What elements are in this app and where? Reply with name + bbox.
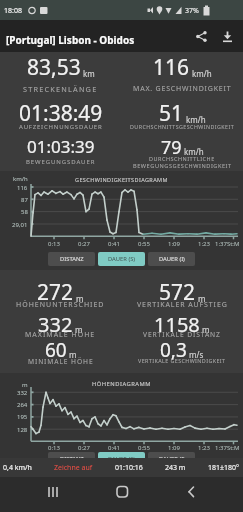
staticText: 0:41	[108, 444, 120, 452]
staticText: 332	[17, 389, 28, 397]
staticText: AUFZEICHNUNGSDAUER	[19, 123, 103, 131]
staticText: 0:55	[138, 444, 150, 452]
staticText: DISTANZ	[60, 255, 84, 263]
staticText: 116	[17, 184, 28, 192]
staticText: km/h	[186, 114, 206, 125]
staticText: 83,53	[27, 53, 81, 82]
staticText: MAXIMALE HÖHE	[25, 330, 96, 340]
staticText: 29,01	[12, 221, 28, 229]
staticText: BEWEGUNGSDAUER	[26, 158, 96, 166]
staticText: DURCHSCHNITTSGESCHWINDIGKEIT	[130, 123, 235, 130]
staticText: 128	[17, 426, 28, 434]
staticText: 51	[159, 99, 184, 128]
staticText: DAUER (S)	[108, 255, 136, 263]
staticText: 87	[21, 196, 28, 204]
staticText: 1:09	[168, 444, 180, 452]
staticText: m/s	[189, 349, 204, 360]
staticText: km/h	[184, 146, 204, 157]
staticText: 332	[38, 311, 73, 338]
staticText: VERTIKALE DISTANZ	[143, 330, 221, 339]
staticText: km/h	[13, 175, 28, 183]
staticText: 0:41	[108, 240, 120, 248]
staticText: 264	[17, 401, 28, 409]
staticText: Zeichne auf	[54, 463, 93, 473]
staticText: m	[198, 293, 206, 304]
staticText: km/h	[192, 68, 212, 79]
staticText: [Portugal] Lisbon - Obidos	[6, 33, 135, 47]
staticText: 195	[17, 413, 28, 421]
staticText: VERTIKALER AUFSTIEG	[137, 300, 228, 310]
staticText: 18:08	[4, 6, 22, 16]
staticText: 58	[21, 208, 28, 216]
staticText: 0,3	[160, 337, 187, 363]
staticText: m	[76, 293, 84, 304]
staticText: 0,4 km/h	[3, 463, 32, 473]
staticText: DAUER (I)	[159, 455, 185, 463]
staticText: 572	[159, 278, 196, 307]
staticText: GESCHWINDIGKEITSDIAGRAMM	[75, 176, 168, 183]
staticText: 0:27	[78, 240, 90, 248]
staticText: HÖHENUNTERSCHIED	[16, 300, 105, 310]
staticText: 1:37St:M	[215, 444, 240, 452]
staticText: 0:27	[78, 444, 90, 452]
staticText: m	[202, 324, 210, 335]
staticText: DAUER (I)	[159, 255, 185, 263]
staticText: 01:03:39	[27, 135, 95, 158]
staticText: 1:37St:M	[215, 240, 240, 248]
staticText: STRECKENLÄNGE	[23, 84, 98, 94]
staticText: 1158	[154, 311, 200, 338]
staticText: MAX. GESCHWINDIGKEIT	[133, 84, 232, 94]
staticText: 116	[153, 53, 190, 82]
staticText: m	[69, 349, 77, 360]
staticText: 37%	[185, 6, 199, 16]
staticText: DURCHSCHNITTLICHE	[149, 155, 215, 162]
staticText: km	[83, 68, 95, 79]
staticText: HÖHENDIAGRAMM	[92, 380, 152, 388]
staticText: 60	[45, 337, 67, 363]
staticText: VERTIKALE GESCHWINDIGKEIT	[138, 357, 226, 364]
staticText: BEWEGUNGSGESCHWINDIGKEIT	[133, 162, 232, 170]
staticText: 01:38:49	[19, 99, 103, 128]
staticText: 1:09	[168, 240, 180, 248]
staticText: 0:13	[48, 240, 60, 248]
staticText: 0:55	[138, 240, 150, 248]
staticText: MINIMALE HÖHE	[28, 357, 94, 366]
staticText: DISTANZ	[60, 455, 84, 463]
staticText: DAUER (S)	[108, 455, 136, 463]
staticText: 272	[37, 278, 74, 307]
staticText: 01:10:16	[115, 463, 143, 473]
staticText: 181±180°	[208, 463, 240, 473]
staticText: 243 m	[165, 463, 186, 473]
staticText: 1:23	[198, 444, 210, 452]
staticText: 1:23	[198, 240, 210, 248]
staticText: 0:13	[48, 444, 60, 452]
staticText: m	[75, 324, 83, 335]
staticText: 79	[161, 135, 182, 160]
staticText: m	[22, 381, 28, 389]
